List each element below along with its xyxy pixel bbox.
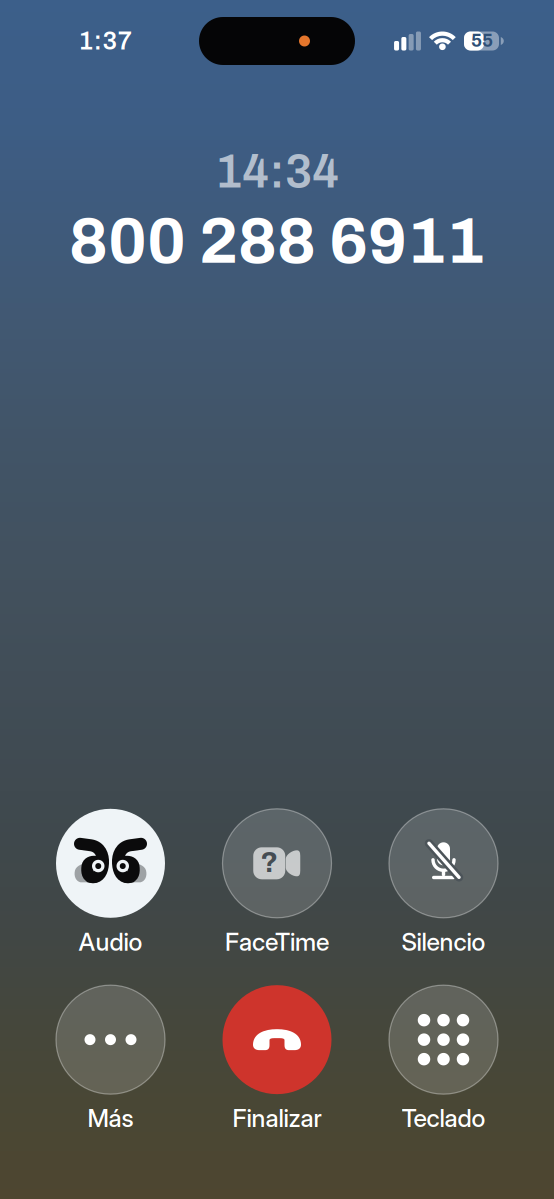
staticText: Audio [78,927,142,957]
staticText: Teclado [401,1103,485,1133]
button[interactable]: Finalizar [194,985,360,1133]
button[interactable]: Silencio [360,809,527,957]
staticText: 14:34 [215,146,339,197]
button[interactable]: Teclado [360,985,527,1133]
button[interactable]: ? [194,809,360,957]
staticText: 1:37 [78,27,132,55]
button[interactable]: Más [27,985,194,1133]
staticText: 800 288 6911 [69,205,485,277]
staticText: FaceTime [225,927,329,957]
staticText: Silencio [401,927,485,957]
button[interactable]: Audio [27,809,194,957]
staticText: Más [87,1103,133,1133]
staticText: Finalizar [232,1103,321,1133]
staticText: ? [260,846,278,878]
staticText: 55 [471,30,493,51]
